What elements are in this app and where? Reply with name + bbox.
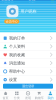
staticText: 用户昵称: [20, 9, 36, 14]
staticText: 中国移动: [2, 0, 14, 3]
staticText: 消息通知: [9, 61, 25, 66]
button[interactable]: 退出登录: [3, 84, 53, 89]
staticText: 我的收藏: [9, 52, 25, 57]
button[interactable]: 我的收藏: [0, 51, 56, 59]
staticText: 我的订单: [9, 36, 25, 41]
staticText: 首页: [3, 96, 9, 100]
staticText: 9:41: [29, 0, 36, 4]
button[interactable]: 首页: [0, 91, 11, 100]
button[interactable]: Avatar: [6, 5, 18, 17]
button[interactable]: 我的: [45, 91, 56, 100]
staticText: 发现: [25, 96, 31, 100]
staticText: 退出登录: [22, 84, 34, 88]
staticText: 设置: [9, 77, 17, 82]
button[interactable]: 帮助中心: [0, 67, 56, 75]
button[interactable]: 发现: [22, 91, 34, 100]
button[interactable]: 个人资料: [0, 42, 56, 50]
button[interactable]: 我的订单: [0, 34, 56, 42]
button[interactable]: 消息通知: [0, 59, 56, 67]
staticText: 会员中心: [6, 20, 18, 23]
staticText: 购物车: [35, 96, 44, 100]
staticText: 帮助中心: [9, 69, 25, 74]
button[interactable]: 分类: [11, 91, 22, 100]
button[interactable]: 购物车: [34, 91, 45, 100]
staticText: 个人资料: [9, 44, 25, 49]
staticText: 分类: [14, 96, 20, 100]
button[interactable]: 会员中心: [4, 19, 19, 24]
button[interactable]: 设置: [0, 76, 56, 84]
staticText: 我的: [47, 96, 53, 100]
